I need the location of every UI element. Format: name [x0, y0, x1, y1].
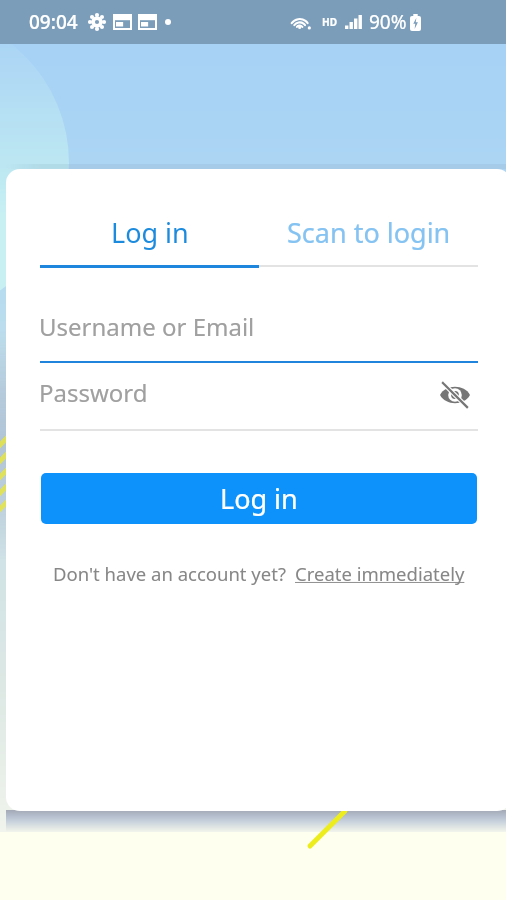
- staticText: Log in: [220, 480, 298, 517]
- staticText: HD: [322, 15, 337, 29]
- button[interactable]: Log in: [40, 207, 259, 257]
- staticText: Don't have an account yet?: [53, 561, 286, 586]
- button[interactable]: Log in: [41, 473, 477, 524]
- button[interactable]: Show password: [434, 374, 476, 416]
- button[interactable]: Create immediately: [295, 561, 465, 586]
- staticText: Create immediately: [295, 561, 465, 586]
- staticText: 09:04: [29, 9, 78, 35]
- staticText: Log in: [111, 214, 189, 251]
- staticText: Password: [39, 376, 148, 409]
- staticText: Username or Email: [39, 310, 255, 343]
- staticText: 90%: [369, 9, 407, 35]
- button[interactable]: Scan to login: [259, 207, 478, 257]
- staticText: Scan to login: [287, 214, 451, 251]
